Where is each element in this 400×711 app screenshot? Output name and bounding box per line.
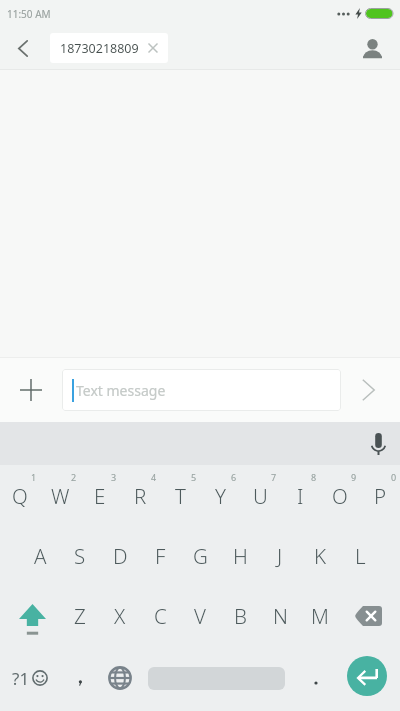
button[interactable]: A <box>20 531 60 581</box>
staticText: 3 <box>111 471 117 483</box>
button[interactable]: C <box>140 591 180 641</box>
staticText: 5 <box>191 471 197 483</box>
staticText: 11:50 AM <box>7 7 51 21</box>
button[interactable]: T <box>160 471 200 521</box>
button[interactable]: S <box>60 531 100 581</box>
staticText: 2 <box>71 471 77 483</box>
staticText: S <box>74 542 86 570</box>
button[interactable] <box>346 593 390 639</box>
button[interactable]: Text message <box>62 369 341 411</box>
button[interactable]: V <box>180 591 220 641</box>
button[interactable]: D <box>100 531 140 581</box>
button[interactable] <box>357 33 387 63</box>
staticText: Z <box>74 602 86 630</box>
staticText: G <box>193 542 208 570</box>
button[interactable] <box>298 655 334 701</box>
button[interactable]: X <box>100 591 140 641</box>
button[interactable]: E <box>80 471 120 521</box>
button[interactable] <box>10 596 54 642</box>
staticText: 18730218809 <box>60 40 139 57</box>
staticText: W <box>51 482 70 510</box>
staticText: 4 <box>151 471 157 483</box>
button[interactable] <box>8 33 38 63</box>
button[interactable] <box>347 656 387 696</box>
staticText: I <box>297 482 304 510</box>
staticText: Y <box>215 482 226 510</box>
staticText: B <box>234 602 247 630</box>
staticText: T <box>175 482 186 510</box>
button[interactable]: P <box>360 471 400 521</box>
staticText: 8 <box>311 471 317 483</box>
staticText: M <box>311 602 329 630</box>
staticText: 0 <box>391 471 397 483</box>
button[interactable] <box>62 655 98 701</box>
button[interactable]: W <box>40 471 80 521</box>
button[interactable]: I <box>280 471 320 521</box>
staticText: E <box>94 482 106 510</box>
button[interactable]: K <box>300 531 340 581</box>
staticText: 1 <box>31 471 37 483</box>
button[interactable]: 18730218809 <box>50 33 168 63</box>
button[interactable]: N <box>260 591 300 641</box>
staticText: N <box>273 602 288 630</box>
button[interactable]: B <box>220 591 260 641</box>
staticText: 6 <box>231 471 237 483</box>
button[interactable]: L <box>340 531 380 581</box>
button[interactable]: M <box>300 591 340 641</box>
staticText: Text message <box>76 381 166 400</box>
button[interactable] <box>360 426 396 462</box>
staticText: V <box>194 602 206 630</box>
button[interactable]: F <box>140 531 180 581</box>
staticText: Q <box>12 482 28 510</box>
button[interactable]: Y <box>200 471 240 521</box>
staticText: L <box>355 542 366 570</box>
button[interactable]: ?1 <box>12 655 48 701</box>
staticText: U <box>253 482 268 510</box>
button[interactable] <box>348 370 388 410</box>
button[interactable]: R <box>120 471 160 521</box>
button[interactable]: J <box>260 531 300 581</box>
staticText: F <box>155 542 166 570</box>
button[interactable]: O <box>320 471 360 521</box>
button[interactable]: U <box>240 471 280 521</box>
staticText: ?1 <box>12 667 30 690</box>
button[interactable]: G <box>180 531 220 581</box>
button[interactable] <box>102 655 138 701</box>
button[interactable]: Z <box>60 591 100 641</box>
staticText: A <box>34 542 47 570</box>
staticText: D <box>113 542 128 570</box>
staticText: H <box>233 542 248 570</box>
staticText: 7 <box>271 471 277 483</box>
staticText: R <box>134 482 147 510</box>
staticText: O <box>332 482 348 510</box>
staticText: C <box>154 602 167 630</box>
staticText: 9 <box>351 471 357 483</box>
staticText: K <box>314 542 327 570</box>
button[interactable]: Q <box>0 471 40 521</box>
staticText: J <box>277 542 283 570</box>
staticText: P <box>374 482 387 510</box>
button[interactable]: H <box>220 531 260 581</box>
staticText: X <box>114 602 126 630</box>
button[interactable] <box>12 371 50 409</box>
